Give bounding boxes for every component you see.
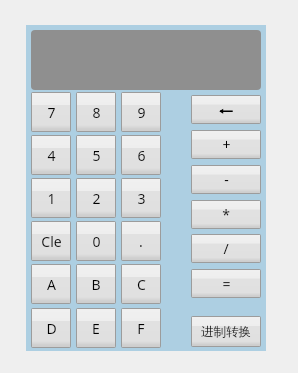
button[interactable]: 6: [122, 136, 160, 174]
button[interactable]: 7: [32, 93, 70, 131]
staticText: 1: [47, 189, 56, 208]
button[interactable]: 8: [77, 93, 115, 131]
staticText: 进制转换: [201, 324, 251, 340]
staticText: 9: [137, 103, 146, 122]
button[interactable]: Minus: [192, 166, 260, 193]
staticText: A: [47, 275, 56, 294]
staticText: 8: [92, 103, 101, 122]
button[interactable]: 0: [77, 222, 115, 260]
button[interactable]: E: [77, 309, 115, 347]
button[interactable]: 9: [122, 93, 160, 131]
staticText: 5: [92, 146, 101, 165]
staticText: 7: [47, 103, 56, 122]
staticText: =: [222, 274, 231, 293]
button[interactable]: Plus: [192, 131, 260, 158]
staticText: 3: [137, 189, 146, 208]
staticText: B: [91, 275, 101, 294]
button[interactable]: 2: [77, 179, 115, 217]
button[interactable]: 1: [32, 179, 70, 217]
button[interactable]: .: [122, 222, 160, 260]
button[interactable]: 4: [32, 136, 70, 174]
button[interactable]: Equals: [192, 270, 260, 297]
staticText: F: [137, 319, 145, 338]
button[interactable]: Multiply: [192, 201, 260, 228]
button[interactable]: B: [77, 265, 115, 303]
button[interactable]: F: [122, 309, 160, 347]
staticText: Cle: [41, 232, 62, 251]
staticText: .: [139, 232, 143, 251]
staticText: 6: [137, 146, 146, 165]
button[interactable]: 进制转换: [192, 317, 260, 346]
staticText: C: [137, 275, 146, 294]
staticText: 2: [92, 189, 101, 208]
staticText: D: [46, 319, 57, 338]
staticText: 0: [92, 232, 101, 251]
button[interactable]: C: [122, 265, 160, 303]
button[interactable]: A: [32, 265, 70, 303]
button[interactable]: Divide: [192, 235, 260, 262]
staticText: /: [223, 239, 229, 258]
staticText: +: [222, 135, 231, 154]
staticText: -: [224, 170, 229, 189]
button[interactable]: Cle: [32, 222, 70, 260]
button[interactable]: 3: [122, 179, 160, 217]
staticText: 4: [47, 146, 56, 165]
staticText: E: [92, 319, 100, 338]
button[interactable]: Backspace: [192, 96, 260, 123]
button[interactable]: 5: [77, 136, 115, 174]
button[interactable]: D: [32, 309, 70, 347]
staticText: *: [222, 205, 230, 224]
